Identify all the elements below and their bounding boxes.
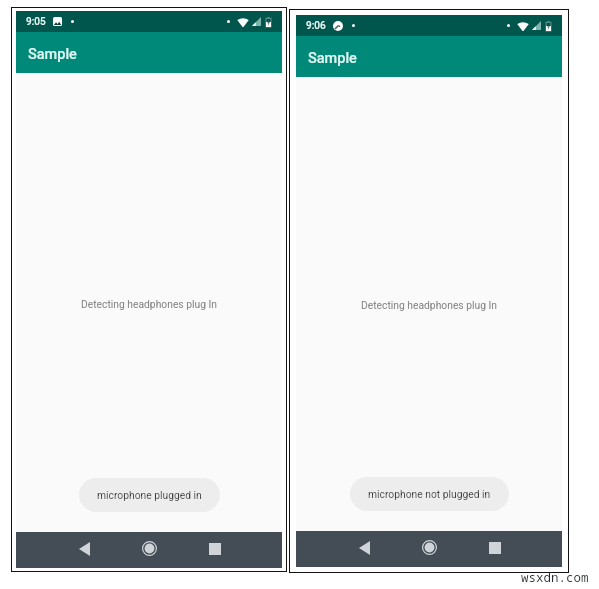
- staticText: Sample: [28, 46, 77, 63]
- staticText: Detecting headphones plug In: [81, 298, 217, 310]
- button[interactable]: Recent apps: [462, 531, 527, 564]
- button[interactable]: Home: [397, 531, 462, 564]
- button[interactable]: Back: [52, 532, 117, 565]
- button[interactable]: microphone plugged in: [79, 478, 220, 512]
- staticText: microphone plugged in: [97, 489, 202, 501]
- staticText: microphone not plugged in: [368, 488, 491, 500]
- staticText: 9:05: [26, 16, 46, 28]
- button[interactable]: microphone not plugged in: [350, 477, 509, 511]
- staticText: wsxdn.com: [521, 569, 589, 586]
- staticText: 9:06: [306, 20, 326, 32]
- button[interactable]: Recent apps: [182, 532, 247, 565]
- button[interactable]: Back: [332, 531, 397, 564]
- staticText: Sample: [308, 50, 357, 67]
- button[interactable]: Home: [117, 532, 182, 565]
- staticText: Detecting headphones plug In: [361, 299, 497, 311]
